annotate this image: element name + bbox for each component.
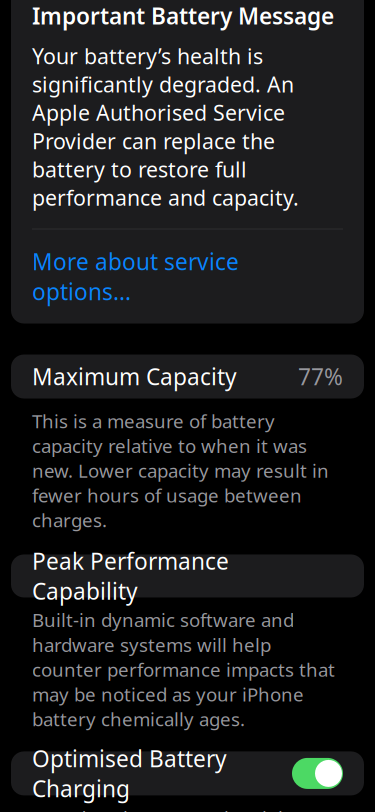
button[interactable]: Optimised Battery Charging	[11, 751, 364, 795]
staticText: To reduce battery ageing, iPhone learns …	[32, 805, 329, 812]
staticText: Optimised Battery Charging	[32, 743, 227, 803]
staticText: 77%	[298, 361, 343, 392]
staticText: Built-in dynamic software and hardware s…	[32, 607, 335, 731]
staticText: More about service options...	[32, 246, 239, 306]
staticText: Maximum Capacity	[32, 361, 237, 392]
staticText: Your battery’s health is significantly d…	[32, 42, 299, 212]
button[interactable]: More about service options...	[32, 229, 343, 323]
staticText: Important Battery Message	[32, 1, 334, 31]
staticText: This is a measure of battery capacity re…	[32, 408, 329, 532]
staticText: Peak Performance Capability	[32, 546, 229, 606]
